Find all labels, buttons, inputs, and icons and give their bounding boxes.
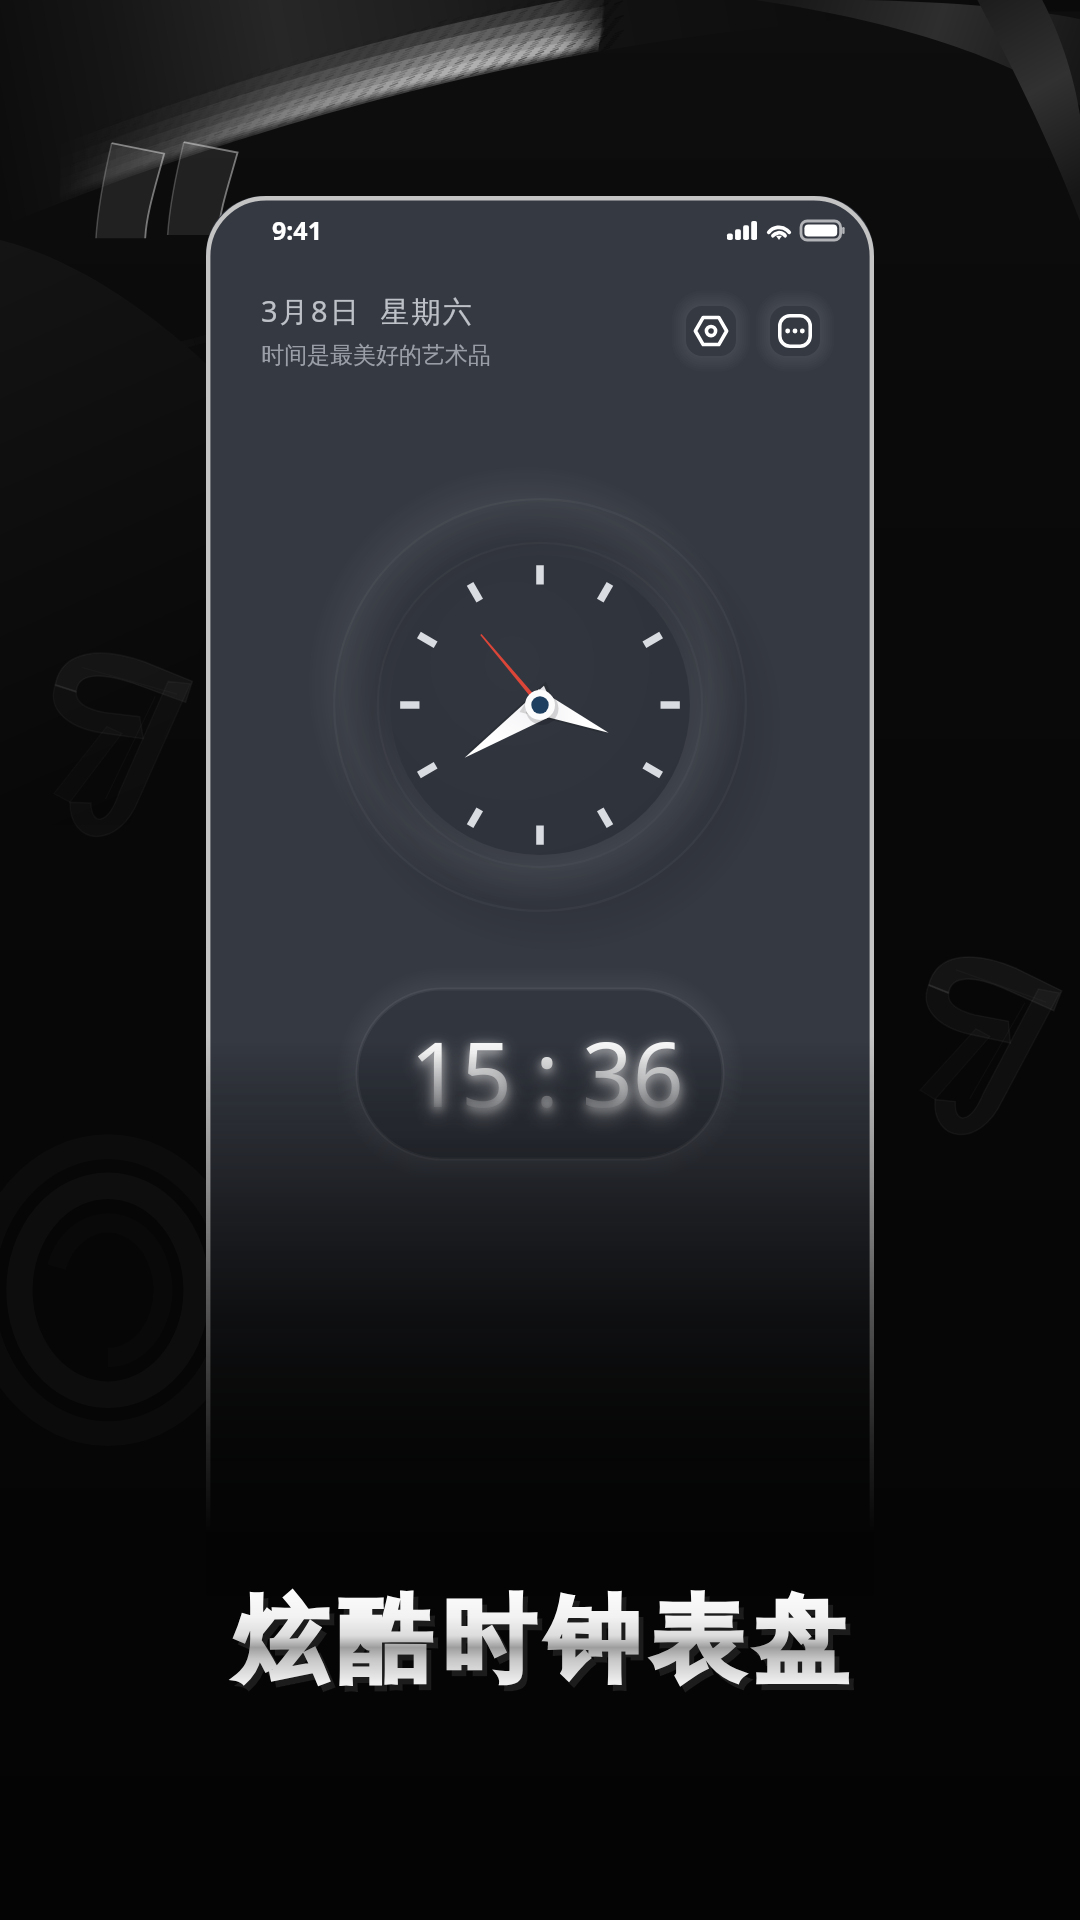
staticText: 酷	[338, 1582, 431, 1699]
staticText: 3月8日 星期六	[261, 291, 475, 331]
button[interactable]: Watch face style	[686, 306, 736, 356]
staticText: 盘	[754, 1582, 847, 1699]
staticText: 盘	[759, 1588, 852, 1705]
staticText: 钟	[546, 1582, 639, 1699]
staticText: 表	[650, 1582, 743, 1699]
button[interactable]: 15 : 36	[325, 959, 755, 1189]
staticText: 15 : 36	[410, 1019, 684, 1140]
button[interactable]: More options	[770, 306, 820, 356]
staticText: 表	[655, 1588, 748, 1705]
staticText: 酷	[343, 1588, 436, 1705]
staticText: 时间是最美好的艺术品	[261, 341, 491, 370]
staticText: 炫	[239, 1588, 332, 1705]
staticText: 时	[442, 1582, 535, 1699]
staticText: 9:41	[272, 213, 322, 247]
staticText: 15 : 36	[410, 1012, 684, 1133]
staticText: 钟	[551, 1588, 644, 1705]
staticText: 15 : 36	[410, 1015, 684, 1136]
staticText: 炫	[234, 1582, 327, 1699]
staticText: 时	[447, 1588, 540, 1705]
